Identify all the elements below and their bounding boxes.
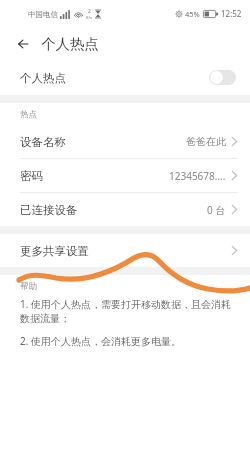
staticText: 2. 使用个人热点，会消耗更多电量。 [20,334,181,348]
staticText: 已连接设备 [20,203,78,217]
staticText: 帮助 [20,281,37,292]
staticText: 中国电信 [28,10,58,19]
staticText: 1. 使用个人热点，需要打开移动数据，且会消耗数据流量； [20,297,234,325]
staticText: 设备名称 [20,135,66,149]
staticText: 0 台 [207,203,226,217]
button[interactable]: 已连接设备 [0,193,250,226]
button[interactable]: 个人热点 [0,60,250,95]
button[interactable]: 更多共享设置 [0,234,250,267]
staticText: 个人热点 [41,35,99,53]
staticText: 个人热点 [20,71,66,85]
staticText: 12345678.... [169,169,226,183]
staticText: 热点 [20,109,37,120]
staticText: 45% [185,9,200,19]
button[interactable]: 设备名称 [0,125,250,158]
staticText: 2 [88,8,91,15]
staticText: K/s [86,15,92,20]
button[interactable]: Back [10,30,38,58]
staticText: 12:52 [221,8,242,19]
staticText: 密码 [20,169,43,183]
staticText: 更多共享设置 [20,244,89,258]
staticText: 爸爸在此 [186,135,226,148]
button[interactable]: 密码 [0,159,250,192]
